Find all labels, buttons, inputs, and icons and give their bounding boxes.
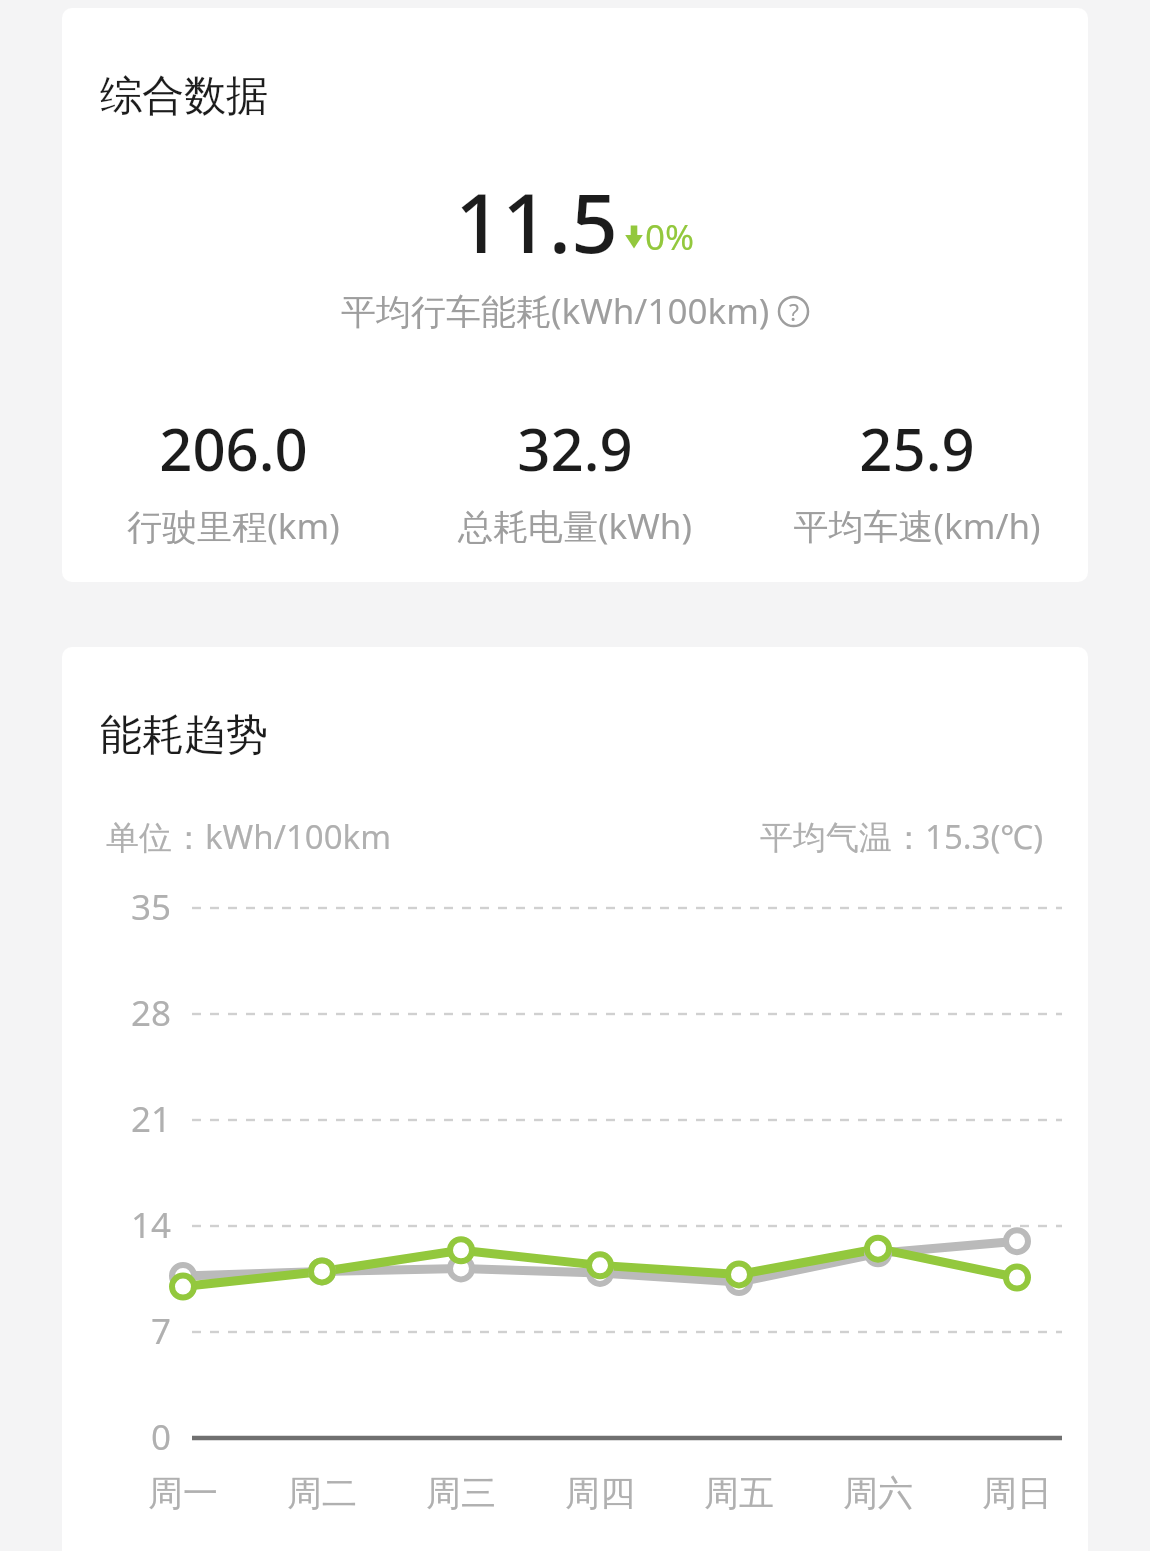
button[interactable]: 周五	[679, 1471, 799, 1515]
button[interactable]: 能耗说明	[777, 295, 810, 328]
button[interactable]: 周一	[123, 1471, 243, 1515]
staticText: 周三	[426, 1471, 496, 1515]
staticText: 0	[151, 1413, 172, 1461]
staticText: 14	[131, 1201, 172, 1249]
staticText: 周四	[565, 1471, 635, 1515]
staticText: 周五	[704, 1471, 774, 1515]
staticText: 平均气温：15.3(℃)	[760, 814, 1044, 859]
staticText: 0%	[645, 213, 695, 261]
staticText: 周一	[148, 1471, 218, 1515]
staticText: 平均行车能耗(kWh/100km)	[341, 287, 770, 335]
staticText: 11.5	[455, 165, 619, 277]
staticText: 单位：kWh/100km	[106, 814, 392, 859]
staticText: 周日	[982, 1471, 1052, 1515]
button[interactable]: 周二	[262, 1471, 382, 1515]
staticText: 总耗电量(kWh)	[458, 502, 692, 550]
button[interactable]: 周四	[540, 1471, 660, 1515]
button[interactable]: 32.9	[404, 409, 746, 550]
staticText: 平均车速(km/h)	[793, 502, 1041, 550]
staticText: 35	[131, 883, 172, 931]
button[interactable]: 周三	[401, 1471, 521, 1515]
staticText: 行驶里程(km)	[127, 502, 340, 550]
button[interactable]: 平均行车能耗(kWh/100km)	[62, 287, 1088, 335]
staticText: 7	[151, 1307, 172, 1355]
button[interactable]: 206.0	[62, 409, 404, 550]
staticText: 周六	[843, 1471, 913, 1515]
staticText: 周二	[287, 1471, 357, 1515]
staticText: 28	[131, 989, 172, 1037]
button[interactable]: 周日	[957, 1471, 1077, 1515]
staticText: 206.0	[159, 409, 308, 488]
staticText: 25.9	[859, 409, 975, 488]
staticText: ?	[789, 296, 799, 327]
staticText: 综合数据	[100, 70, 268, 123]
button[interactable]: 25.9	[746, 409, 1088, 550]
button[interactable]: 周六	[818, 1471, 938, 1515]
staticText: 能耗趋势	[100, 709, 268, 762]
staticText: 21	[131, 1095, 172, 1143]
staticText: 32.9	[517, 409, 633, 488]
